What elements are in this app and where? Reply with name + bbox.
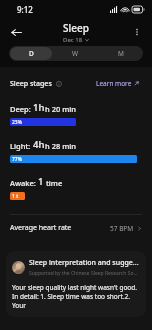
staticText: Light: [10, 141, 33, 151]
staticText: 4h [33, 138, 45, 151]
staticText: W [72, 49, 79, 58]
staticText: Deep: [10, 104, 33, 114]
button[interactable]: D [10, 47, 52, 60]
button[interactable]: Back [5, 21, 27, 43]
button[interactable]: Sleep interpretation and sugge... [6, 251, 146, 317]
button[interactable]: W [54, 47, 97, 60]
button[interactable]: Dec 18 [63, 36, 89, 44]
staticText: 23% [12, 119, 22, 126]
staticText: Learn more [96, 79, 132, 88]
staticText: 9:12 [17, 4, 33, 15]
button[interactable]: Average heart rate [0, 215, 152, 241]
staticText: Your sleep quality last night wasn't goo… [12, 283, 140, 310]
staticText: Dec 18 [63, 36, 83, 44]
button[interactable]: Info [55, 80, 62, 87]
staticText: 1h [33, 101, 45, 114]
button[interactable]: Learn more [93, 77, 142, 90]
staticText: 77% [12, 156, 22, 163]
staticText: h 28 min [45, 141, 77, 151]
button[interactable]: More options [127, 22, 147, 42]
staticText: 1 [38, 175, 44, 188]
button[interactable]: 1 t [10, 192, 25, 200]
staticText: 1 t [12, 193, 19, 200]
button[interactable]: M [99, 47, 142, 60]
staticText: 57 BPM [110, 224, 134, 233]
staticText: Sleep [63, 21, 89, 35]
staticText: Sleep stages [10, 79, 52, 89]
staticText: Supported by the Chinese Sleep Research … [29, 270, 138, 277]
staticText: Awake: [10, 178, 38, 188]
staticText: Sleep interpretation and sugge... [29, 258, 139, 268]
button[interactable]: 23% [10, 118, 76, 126]
staticText: M [118, 49, 124, 58]
staticText: h 20 min [45, 104, 77, 114]
staticText: Average heart rate [10, 223, 72, 233]
staticText: time [44, 178, 63, 188]
button[interactable]: 77% [10, 155, 137, 163]
staticText: D [29, 49, 34, 58]
